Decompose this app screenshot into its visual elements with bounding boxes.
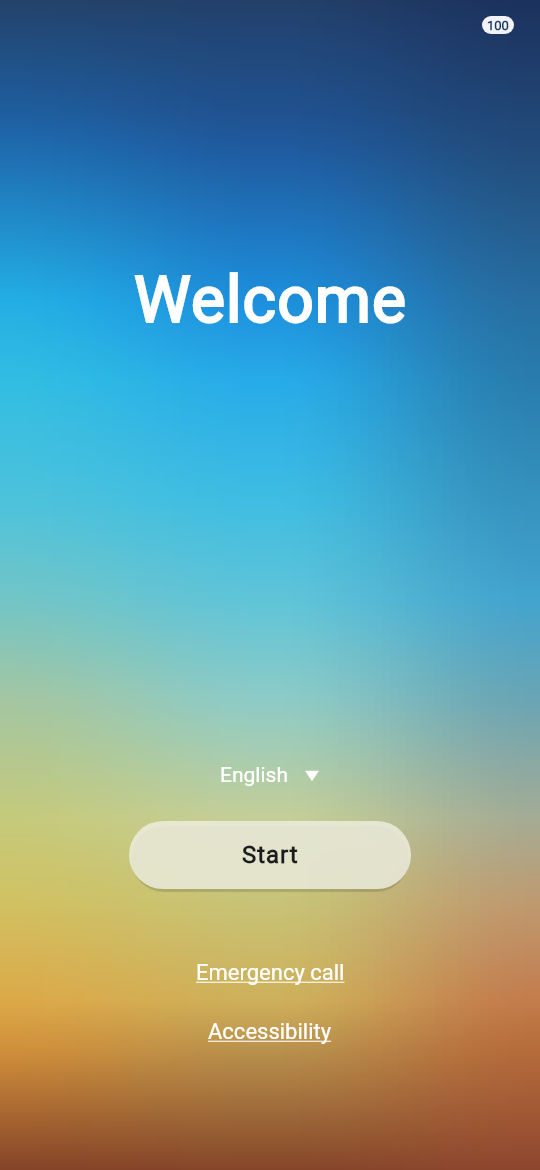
staticText: Emergency call [196, 960, 345, 986]
button[interactable]: Emergency call [184, 955, 357, 991]
staticText: Welcome [134, 263, 407, 338]
button[interactable]: Battery 100 percent [482, 16, 514, 34]
button[interactable]: Accessibility [196, 1014, 344, 1050]
staticText: 100 [487, 18, 509, 33]
button[interactable]: Start [129, 821, 411, 889]
staticText: English [220, 763, 288, 788]
staticText: Accessibility [208, 1019, 332, 1045]
button[interactable]: English [208, 758, 331, 793]
staticText: Start [242, 841, 299, 869]
